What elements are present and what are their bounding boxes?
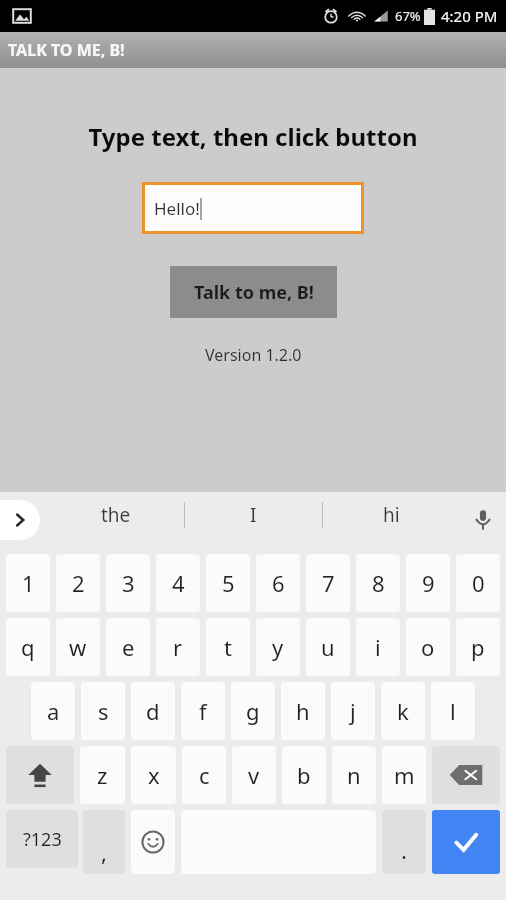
button[interactable]: m	[382, 746, 426, 804]
button[interactable]: h	[281, 682, 325, 740]
button[interactable]: r	[156, 618, 200, 676]
button[interactable]: w	[56, 618, 100, 676]
button[interactable]: 3	[106, 554, 150, 612]
button[interactable]: Expand suggestions	[0, 500, 40, 540]
button[interactable]: o	[406, 618, 450, 676]
button[interactable]: 7	[306, 554, 350, 612]
staticText: 3	[122, 568, 135, 598]
button[interactable]: y	[256, 618, 300, 676]
button[interactable]: 4	[156, 554, 200, 612]
staticText: t	[224, 632, 232, 662]
button[interactable]: e	[106, 618, 150, 676]
staticText: I	[250, 502, 257, 528]
button[interactable]: c	[182, 746, 226, 804]
button[interactable]: 5	[206, 554, 250, 612]
staticText: 67%	[395, 7, 421, 25]
button[interactable]: i	[356, 618, 400, 676]
button[interactable]: t	[206, 618, 250, 676]
button[interactable]: 6	[256, 554, 300, 612]
staticText: o	[421, 632, 435, 662]
button[interactable]: 9	[406, 554, 450, 612]
staticText: b	[297, 760, 311, 790]
button[interactable]: l	[431, 682, 475, 740]
button[interactable]: g	[231, 682, 275, 740]
staticText: 1	[22, 568, 35, 598]
staticText: m	[394, 760, 415, 790]
staticText: s	[98, 696, 109, 726]
button[interactable]: 0	[456, 554, 500, 612]
staticText: 5	[222, 568, 235, 598]
staticText: q	[21, 632, 35, 662]
staticText: 8	[372, 568, 385, 598]
button[interactable]: Emoji	[131, 810, 175, 874]
button[interactable]: b	[282, 746, 326, 804]
button[interactable]: x	[131, 746, 176, 804]
staticText: hi	[383, 502, 400, 528]
button[interactable]: Voice input	[460, 497, 506, 543]
staticText: the	[101, 502, 131, 528]
staticText: r	[173, 632, 183, 662]
staticText: z	[97, 760, 108, 790]
button[interactable]: Shift	[6, 746, 74, 804]
staticText: y	[272, 632, 284, 662]
staticText: h	[296, 696, 310, 726]
staticText: a	[47, 696, 60, 726]
button[interactable]: Backspace	[432, 746, 500, 804]
button[interactable]: Hello!	[145, 185, 361, 231]
staticText: v	[248, 760, 260, 790]
button[interactable]: .	[382, 810, 426, 874]
button[interactable]: the	[48, 492, 184, 538]
staticText: Hello!	[154, 197, 200, 220]
button[interactable]: v	[232, 746, 276, 804]
staticText: f	[199, 696, 207, 726]
staticText: u	[321, 632, 335, 662]
staticText: Talk to me, B!	[194, 280, 314, 305]
staticText: p	[471, 632, 485, 662]
button[interactable]: k	[381, 682, 425, 740]
button[interactable]: p	[456, 618, 500, 676]
button[interactable]: Enter	[432, 810, 500, 874]
staticText: 2	[72, 568, 85, 598]
staticText: l	[450, 696, 456, 726]
button[interactable]: Talk to me, B!	[170, 266, 337, 318]
staticText: 7	[322, 568, 335, 598]
button[interactable]: d	[131, 682, 175, 740]
button[interactable]: f	[181, 682, 225, 740]
button[interactable]: ,	[83, 810, 125, 874]
button[interactable]: 8	[356, 554, 400, 612]
staticText: i	[375, 632, 381, 662]
staticText: c	[199, 760, 210, 790]
button[interactable]: 2	[56, 554, 100, 612]
button[interactable]: I	[185, 492, 322, 538]
staticText: Version 1.2.0	[205, 344, 302, 366]
staticText: x	[148, 760, 160, 790]
staticText: ,	[101, 837, 107, 867]
staticText: .	[401, 835, 407, 865]
button[interactable]: z	[80, 746, 125, 804]
staticText: 6	[272, 568, 285, 598]
button[interactable]: hi	[323, 492, 460, 538]
staticText: n	[347, 760, 361, 790]
staticText: e	[122, 632, 135, 662]
staticText: k	[397, 696, 409, 726]
staticText: w	[69, 632, 87, 662]
staticText: g	[246, 696, 260, 726]
button[interactable]: s	[81, 682, 125, 740]
staticText: d	[146, 696, 160, 726]
staticText: 9	[422, 568, 435, 598]
button[interactable]: ?123	[6, 810, 78, 868]
button[interactable]: a	[31, 682, 75, 740]
staticText: ?123	[23, 827, 62, 852]
button[interactable]: u	[306, 618, 350, 676]
staticText: j	[350, 696, 356, 726]
button[interactable]: j	[331, 682, 375, 740]
button[interactable]: n	[332, 746, 376, 804]
staticText: 4	[172, 568, 185, 598]
button[interactable]: q	[6, 618, 50, 676]
staticText: TALK TO ME, B!	[8, 39, 125, 61]
staticText: 4:20 PM	[441, 6, 498, 26]
staticText: 0	[472, 568, 485, 598]
staticText: Type text, then click button	[88, 120, 418, 153]
button[interactable]: 1	[6, 554, 50, 612]
